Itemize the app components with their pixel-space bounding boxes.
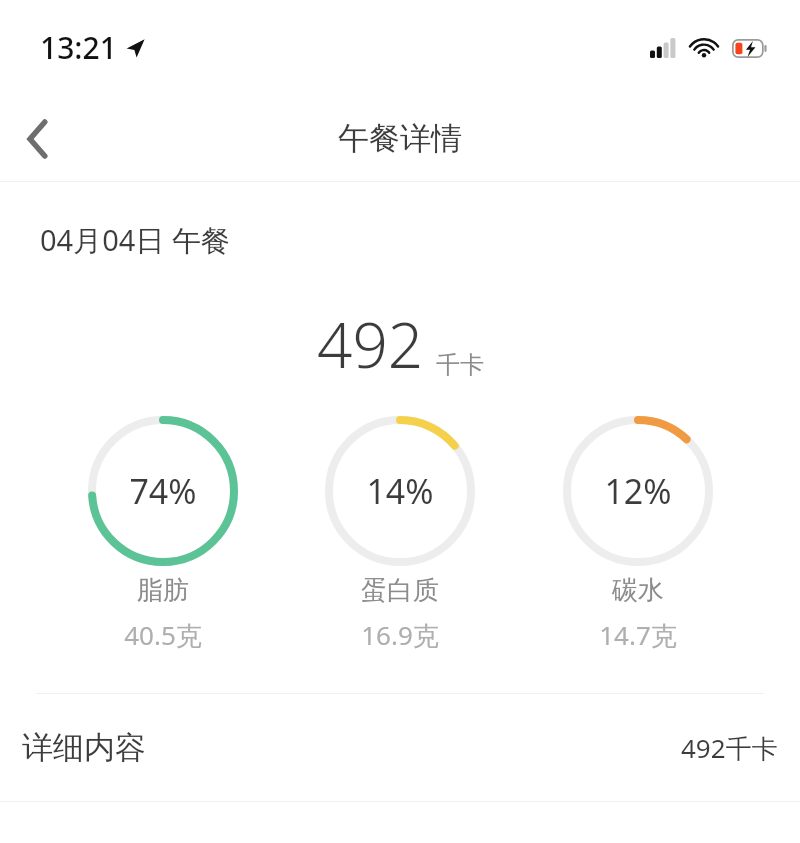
- button[interactable]: 详细内容: [0, 694, 800, 801]
- staticText: 74%: [129, 468, 197, 514]
- staticText: 04月04日 午餐: [40, 220, 230, 260]
- staticText: 14%: [366, 468, 434, 514]
- staticText: 详细内容: [22, 728, 146, 767]
- staticText: 13:21: [40, 27, 117, 68]
- staticText: 蛋白质: [361, 574, 439, 607]
- staticText: 12%: [604, 468, 672, 514]
- staticText: 492千卡: [681, 730, 778, 766]
- staticText: 碳水: [612, 574, 664, 607]
- staticText: 40.5克: [124, 617, 202, 653]
- staticText: 16.9克: [361, 617, 439, 653]
- staticText: 千卡: [436, 350, 484, 380]
- staticText: 492: [317, 302, 424, 386]
- staticText: 脂肪: [137, 574, 189, 607]
- staticText: 午餐详情: [338, 119, 462, 158]
- staticText: 14.7克: [599, 617, 677, 653]
- button[interactable]: Back: [0, 101, 76, 177]
